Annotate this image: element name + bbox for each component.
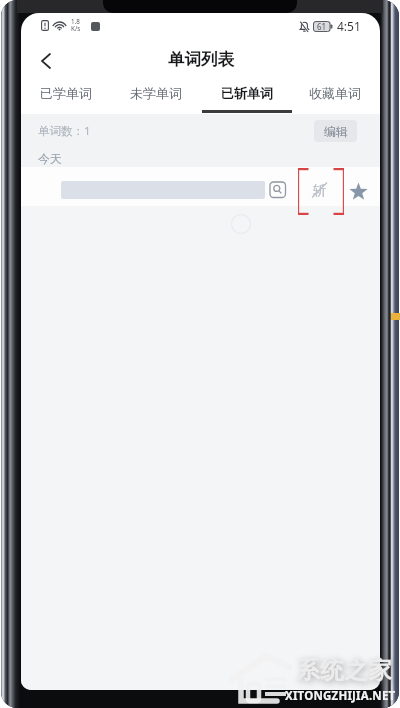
button[interactable]: 已学单词 [26,75,106,111]
staticText: 已斩单词 [221,85,273,101]
staticText: 单词数：1 [38,123,91,139]
staticText: 4:51 [337,18,361,34]
button[interactable]: 未学单词 [116,75,196,111]
staticText: 单词列表 [168,49,234,70]
staticText: 今天 [38,151,62,166]
button[interactable] [31,47,61,75]
button[interactable]: 收藏单词 [295,75,375,111]
staticText: 系统之家 [296,655,392,685]
staticText: 编辑 [324,124,348,139]
button[interactable]: 斩 [309,179,330,201]
button[interactable]: 已斩单词 [207,75,287,111]
staticText: 未学单词 [130,85,182,101]
staticText: 61 [317,21,327,32]
button[interactable]: 编辑 [314,120,357,142]
staticText: XITONGZHIJIA.NET [285,688,396,704]
staticText: 收藏单词 [309,85,361,101]
button[interactable] [347,180,370,203]
staticText: 已学单词 [40,85,92,101]
staticText: 1.8 [71,17,80,26]
staticText: 斩 [313,182,327,199]
staticText: K/s [71,24,81,33]
button[interactable] [269,181,288,200]
